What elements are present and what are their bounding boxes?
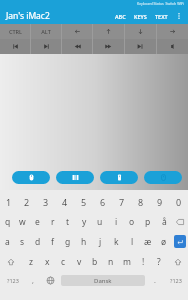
staticText: Jan's iMac2 [6,10,50,22]
button[interactable]: å [156,212,172,231]
button[interactable]: b [87,252,103,271]
button[interactable]: Down arrow [125,24,156,39]
staticText: z [29,256,33,268]
button[interactable]: s [15,232,30,251]
staticText: ? [157,256,161,268]
button[interactable]: x [39,252,55,271]
staticText: 2 [24,196,30,208]
button[interactable]: Up arrow [93,24,124,39]
button[interactable]: k [108,232,124,251]
button[interactable]: d [30,232,45,251]
button[interactable]: Backspace [172,212,188,231]
button[interactable]: q [0,212,15,231]
button[interactable]: Space [61,275,145,286]
button[interactable]: Shift [0,252,22,271]
button[interactable]: ! [135,252,151,271]
button[interactable]: h [76,232,92,251]
staticText: l [131,236,134,248]
button[interactable]: y [76,212,92,231]
button[interactable]: Trackpad [0,54,188,190]
button[interactable]: More options [172,9,186,23]
button[interactable]: 4 [55,192,74,211]
button[interactable]: ?123 [0,272,25,289]
button[interactable]: 3 [36,192,55,211]
button[interactable]: Comma [25,272,41,289]
staticText: y [82,216,87,228]
button[interactable]: KEYS [130,10,151,23]
button[interactable]: l [124,232,140,251]
button[interactable]: o [124,212,140,231]
button[interactable]: v [71,252,87,271]
button[interactable]: Next track [31,39,61,54]
button[interactable]: æ [140,232,156,251]
button[interactable]: Previous track [0,39,30,54]
button[interactable]: i [108,212,124,231]
staticText: , [32,276,34,286]
button[interactable]: TEXT [151,10,172,23]
staticText: s [20,236,25,248]
button[interactable]: ALT [31,24,61,39]
button[interactable]: ? [151,252,167,271]
button[interactable]: u [92,212,108,231]
button[interactable]: e [30,212,45,231]
button[interactable]: 9 [150,192,169,211]
button[interactable]: t [60,212,76,231]
button[interactable]: ?123 [163,272,188,289]
button[interactable]: Window [56,171,94,184]
staticText: e [35,216,40,228]
staticText: d [35,236,41,248]
staticText: KEYS [134,13,147,20]
button[interactable]: Mute [157,39,188,54]
button[interactable]: Scroll [144,171,182,184]
button[interactable]: 7 [112,192,131,211]
button[interactable]: Change language [41,272,59,289]
button[interactable]: ABC [111,10,130,23]
staticText: 1 [6,196,12,208]
button[interactable]: Right arrow [157,24,188,39]
staticText: a [5,236,10,248]
button[interactable]: Left click [12,171,50,184]
staticText: n [108,256,114,268]
staticText: w [19,216,26,228]
button[interactable]: 6 [93,192,112,211]
button[interactable]: Rewind [62,39,92,54]
button[interactable]: n [103,252,119,271]
staticText: v [77,256,82,268]
staticText: æ [144,236,152,248]
staticText: x [45,256,50,268]
button[interactable]: 1 [0,192,18,211]
button[interactable]: p [140,212,156,231]
button[interactable]: Left arrow [62,24,92,39]
button[interactable]: m [119,252,135,271]
button[interactable]: Key [100,171,138,184]
button[interactable]: Enter [174,235,186,248]
staticText: t [66,216,70,228]
button[interactable]: 5 [74,192,93,211]
staticText: ! [142,256,145,268]
button[interactable]: Play [125,39,156,54]
staticText: r [51,216,55,228]
button[interactable]: r [45,212,60,231]
button[interactable]: Shift [167,252,188,271]
staticText: q [5,216,11,228]
button[interactable]: Fast forward [93,39,124,54]
staticText: ø [161,236,167,248]
staticText: p [145,216,151,228]
button[interactable]: ø [156,232,172,251]
button[interactable]: a [0,232,15,251]
button[interactable]: f [45,232,60,251]
button[interactable]: 0 [169,192,188,211]
staticText: 0 [176,196,182,208]
button[interactable]: CTRL [0,24,30,39]
button[interactable]: g [60,232,76,251]
button[interactable]: j [92,232,108,251]
button[interactable]: Period [147,272,163,289]
staticText: CTRL [9,28,22,35]
button[interactable]: w [15,212,30,231]
button[interactable]: 8 [131,192,150,211]
button[interactable]: z [22,252,39,271]
staticText: Keyboard Status Switch WiFi [137,1,185,6]
button[interactable]: c [55,252,71,271]
staticText: b [92,256,98,268]
button[interactable]: 2 [18,192,36,211]
